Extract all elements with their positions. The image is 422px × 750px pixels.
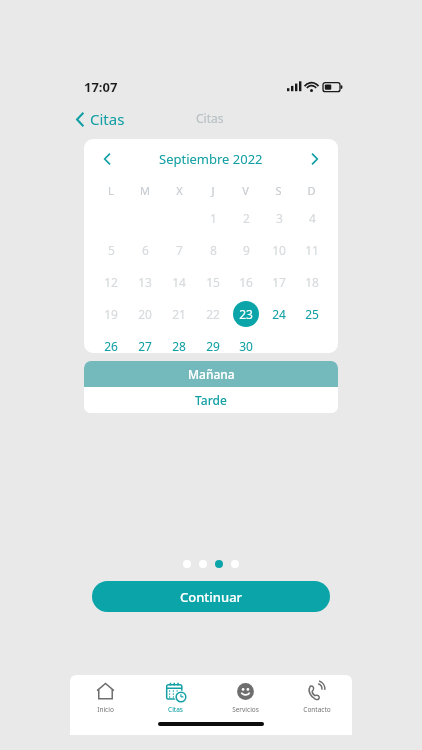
staticText: 30 — [239, 338, 253, 353]
staticText: 8 — [210, 242, 217, 258]
staticText: D — [307, 183, 316, 198]
staticText: X — [176, 183, 183, 198]
button[interactable]: 23 — [233, 301, 259, 327]
staticText: 13 — [138, 274, 152, 290]
staticText: 17:07 — [84, 78, 118, 96]
button[interactable]: 4 — [299, 205, 325, 231]
staticText: 17 — [272, 274, 286, 290]
button[interactable]: 3 — [266, 205, 292, 231]
staticText: Tarde — [195, 392, 227, 408]
staticText: 21 — [172, 306, 186, 322]
staticText: 1 — [210, 210, 217, 226]
staticText: 14 — [172, 274, 186, 290]
staticText: S — [275, 183, 282, 198]
button[interactable]: 17 — [266, 269, 292, 295]
staticText: Continuar — [180, 588, 243, 606]
staticText: 11 — [305, 242, 319, 258]
button[interactable]: Citas — [140, 675, 210, 714]
staticText: Citas — [90, 109, 125, 129]
staticText: Citas — [168, 705, 183, 714]
button[interactable]: 22 — [200, 301, 226, 327]
staticText: Contacto — [303, 705, 331, 714]
button[interactable]: 18 — [299, 269, 325, 295]
button[interactable]: 28 — [166, 333, 192, 353]
staticText: 26 — [104, 338, 118, 353]
staticText: 28 — [172, 338, 186, 353]
button[interactable]: 25 — [299, 301, 325, 327]
button[interactable]: 14 — [166, 269, 192, 295]
button[interactable]: 5 — [98, 237, 124, 263]
button[interactable]: 9 — [233, 237, 259, 263]
staticText: 27 — [138, 338, 152, 353]
staticText: 19 — [104, 306, 118, 322]
button[interactable]: 24 — [266, 301, 292, 327]
button[interactable]: 15 — [200, 269, 226, 295]
button[interactable]: 1 — [200, 205, 226, 231]
staticText: 18 — [305, 274, 319, 290]
button[interactable]: 10 — [266, 237, 292, 263]
button[interactable]: 29 — [200, 333, 226, 353]
button[interactable]: Previous month — [98, 147, 117, 171]
staticText: Citas — [196, 110, 224, 126]
button[interactable]: 8 — [200, 237, 226, 263]
staticText: V — [242, 183, 249, 198]
staticText: 5 — [108, 242, 115, 258]
button[interactable]: Servicios — [210, 675, 281, 714]
button[interactable]: 6 — [132, 237, 158, 263]
staticText: Servicios — [232, 705, 259, 714]
button[interactable]: 2 — [233, 205, 259, 231]
button[interactable]: 30 — [233, 333, 259, 353]
button[interactable]: 27 — [132, 333, 158, 353]
staticText: 29 — [206, 338, 220, 353]
staticText: 7 — [176, 242, 183, 258]
staticText: 10 — [272, 242, 286, 258]
button[interactable]: Tarde — [84, 387, 338, 413]
staticText: 24 — [272, 306, 286, 322]
staticText: J — [211, 183, 215, 198]
staticText: Mañana — [188, 366, 235, 382]
staticText: Inicio — [97, 705, 114, 714]
staticText: 12 — [104, 274, 118, 290]
button[interactable]: 26 — [98, 333, 124, 353]
staticText: 9 — [243, 242, 250, 258]
button[interactable]: 16 — [233, 269, 259, 295]
button[interactable]: 21 — [166, 301, 192, 327]
button[interactable]: 11 — [299, 237, 325, 263]
button[interactable]: 20 — [132, 301, 158, 327]
staticText: L — [108, 183, 114, 198]
button[interactable]: 12 — [98, 269, 124, 295]
staticText: 20 — [138, 306, 152, 322]
button[interactable]: Inicio — [70, 675, 140, 714]
staticText: M — [140, 183, 150, 198]
button[interactable]: Next month — [305, 147, 324, 171]
staticText: 2 — [243, 210, 250, 226]
staticText: 3 — [276, 210, 283, 226]
button[interactable]: 7 — [166, 237, 192, 263]
staticText: Septiembre 2022 — [159, 150, 263, 168]
staticText: 6 — [142, 242, 149, 258]
staticText: 16 — [239, 274, 253, 290]
staticText: 4 — [309, 210, 316, 226]
button[interactable]: 13 — [132, 269, 158, 295]
button[interactable]: Continuar — [92, 581, 330, 612]
button[interactable]: Mañana — [84, 361, 338, 387]
staticText: 25 — [305, 306, 319, 322]
button[interactable]: Contacto — [281, 675, 352, 714]
button[interactable]: 19 — [98, 301, 124, 327]
button[interactable]: Citas — [72, 106, 129, 132]
staticText: 22 — [206, 306, 220, 322]
staticText: 15 — [206, 274, 220, 290]
staticText: 23 — [239, 306, 253, 322]
